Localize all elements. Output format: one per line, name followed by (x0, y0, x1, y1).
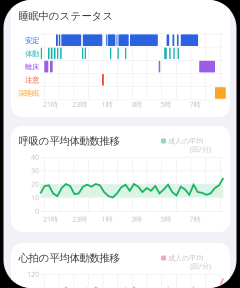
staticText: 10 (31, 193, 39, 202)
staticText: 深睡眠 (18, 89, 39, 98)
staticText: 呼吸の平均体動数推移 (19, 134, 120, 147)
staticText: 20 (31, 179, 39, 189)
staticText: 3時 (131, 214, 142, 224)
staticText: 5時 (160, 214, 171, 224)
staticText: 30 (31, 166, 39, 175)
staticText: 心拍の平均体動数推移 (19, 251, 120, 264)
staticText: 21時 (43, 99, 58, 109)
staticText: 21時 (43, 214, 58, 224)
staticText: 23時 (72, 99, 87, 109)
staticText: 注意 (25, 75, 39, 85)
staticText: 安定 (25, 36, 39, 45)
staticText: 0 (35, 206, 39, 216)
button[interactable]: 睡眠中のステータス (11, 0, 230, 117)
staticText: 7時 (189, 214, 200, 224)
staticText: 40 (31, 152, 39, 162)
staticText: 5時 (160, 99, 171, 109)
staticText: (回/分) (190, 261, 211, 271)
button[interactable]: 呼吸の平均体動数推移 (11, 126, 230, 232)
staticText: 1時 (102, 99, 113, 109)
staticText: 7時 (189, 99, 200, 109)
button[interactable]: 心拍の平均体動数推移 (11, 243, 230, 288)
staticText: 成人の平均 (168, 253, 203, 263)
staticText: 120 (27, 269, 39, 279)
staticText: 成人の平均 (168, 136, 203, 146)
staticText: 3時 (131, 99, 142, 109)
staticText: 体動 (25, 49, 39, 58)
staticText: 23時 (72, 214, 87, 224)
staticText: 睡眠中のステータス (19, 9, 114, 22)
staticText: 1時 (102, 214, 113, 224)
staticText: 離床 (25, 62, 39, 72)
staticText: (回/分) (190, 144, 211, 154)
